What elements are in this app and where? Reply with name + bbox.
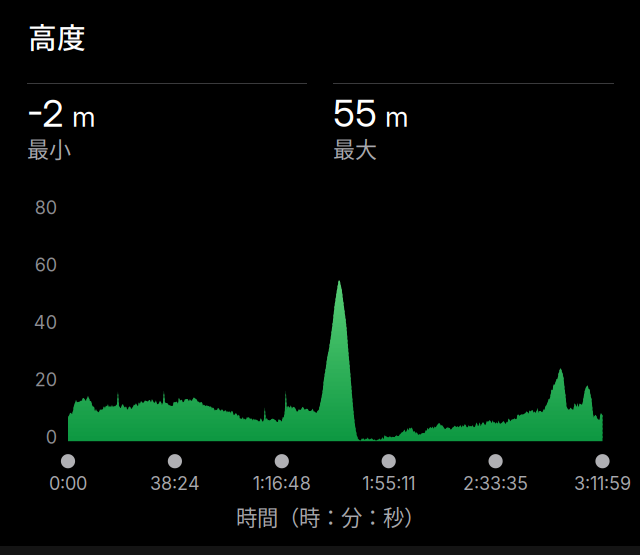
button[interactable]: 標高グラフ	[68, 190, 602, 441]
staticText: m	[72, 100, 96, 133]
staticText: 1:55:11	[362, 472, 415, 494]
staticText: 0:00	[49, 472, 87, 494]
staticText: 40	[34, 311, 57, 333]
staticText: -2	[27, 90, 64, 136]
staticText: 2:33:35	[463, 472, 528, 494]
staticText: m	[385, 100, 409, 133]
staticText: 20	[35, 369, 57, 391]
staticText: 1:16:48	[253, 472, 311, 494]
staticText: 最小	[27, 132, 71, 164]
staticText: 55	[333, 90, 377, 136]
staticText: 60	[35, 254, 57, 276]
staticText: 80	[35, 197, 57, 218]
staticText: 3:11:59	[574, 472, 631, 494]
staticText: 0	[46, 426, 57, 448]
staticText: 最大	[333, 132, 377, 164]
staticText: 38:24	[150, 472, 200, 494]
staticText: 高度	[28, 15, 86, 57]
staticText: 時間（時：分：秒）	[236, 501, 425, 532]
